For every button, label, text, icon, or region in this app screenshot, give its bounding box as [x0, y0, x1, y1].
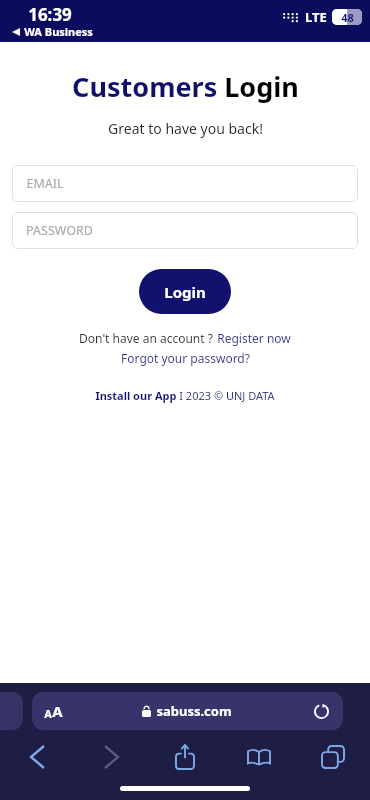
button[interactable] [0, 692, 23, 730]
staticText: Customers Login [72, 68, 299, 105]
button[interactable]: Share [148, 738, 222, 776]
staticText: Forgot your password? [121, 350, 250, 366]
staticText: A [44, 706, 52, 721]
staticText: Register now [217, 330, 291, 346]
staticText: LTE [305, 8, 327, 26]
staticText: EMAIL [26, 175, 64, 192]
button[interactable]: WA Business [10, 24, 95, 39]
button[interactable]: Forward [74, 738, 148, 776]
staticText: Don't have an account ? [79, 330, 213, 346]
button[interactable]: PASSWORD [12, 212, 358, 249]
button[interactable]: Tabs [296, 738, 370, 776]
button[interactable]: Bookmarks [222, 738, 296, 776]
button[interactable]: Register now [217, 330, 291, 346]
button[interactable]: Forgot your password? [121, 350, 250, 366]
staticText: 48 [341, 10, 354, 25]
button[interactable]: Install our App I 2023 © UNJ DATA [95, 388, 275, 403]
button[interactable]: Reload [311, 701, 331, 721]
staticText: PASSWORD [26, 222, 93, 239]
other: Text size options [44, 701, 63, 721]
staticText: Login [164, 282, 206, 302]
button[interactable]: Login [139, 269, 231, 314]
button[interactable]: Back [0, 738, 74, 776]
staticText: sabuss.com [156, 702, 232, 720]
staticText: Install our App I 2023 © UNJ DATA [95, 388, 275, 403]
button[interactable]: Text size options [32, 692, 343, 730]
staticText: 16:39 [28, 3, 72, 26]
staticText: Great to have you back! [108, 119, 263, 138]
staticText: WA Business [24, 24, 93, 39]
button[interactable]: EMAIL [12, 165, 358, 202]
staticText: A [52, 701, 63, 721]
